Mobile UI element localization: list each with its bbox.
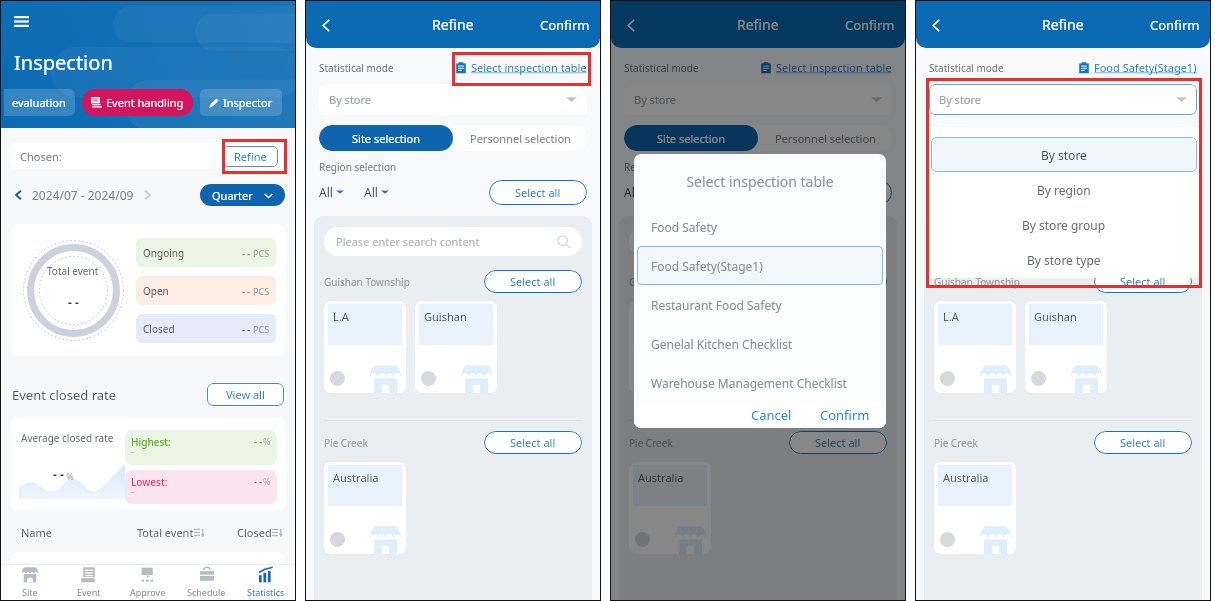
button[interactable]: Confirm <box>814 404 876 426</box>
button[interactable]: Back <box>617 11 645 39</box>
button[interactable]: Inspector <box>200 89 282 116</box>
button[interactable]: Statistics <box>236 565 295 600</box>
button[interactable]: Closed <box>136 314 276 343</box>
button[interactable]: All <box>364 184 389 200</box>
staticText: L.A <box>333 309 349 324</box>
staticText: Personnel selection <box>1080 131 1181 146</box>
staticText: Select all <box>1120 274 1166 289</box>
button[interactable]: By store <box>319 84 587 115</box>
button[interactable]: Schedule <box>177 565 236 600</box>
staticText: Approve <box>130 586 166 598</box>
button[interactable]: Warehouse Management Checklist <box>637 363 883 402</box>
button[interactable]: Refine <box>223 146 278 167</box>
staticText: 2024/07 - 2024/09 <box>32 187 134 203</box>
button[interactable]: Food Safety <box>637 207 883 246</box>
button[interactable]: Cancel <box>745 404 798 426</box>
button[interactable]: Please enter search content <box>324 227 582 256</box>
button[interactable]: Site <box>1 565 59 600</box>
button[interactable]: By region <box>931 172 1197 207</box>
button[interactable]: L.A <box>934 301 1016 393</box>
button[interactable]: Australia <box>629 462 711 554</box>
button[interactable]: Select inspection table <box>455 60 587 75</box>
button[interactable]: Site selection <box>624 125 758 151</box>
button[interactable]: Select all <box>489 180 587 205</box>
button[interactable]: Food Safety(Stage1) <box>637 246 883 285</box>
button[interactable]: View all <box>207 383 284 406</box>
button[interactable]: Select all <box>1094 270 1192 293</box>
button[interactable]: By store <box>931 137 1197 172</box>
button[interactable]: Event handling <box>82 89 193 116</box>
button[interactable]: Genelal Kitchen Checklist <box>637 324 883 363</box>
button[interactable]: By store <box>624 84 892 115</box>
staticText: - - <box>68 294 79 310</box>
button[interactable]: Confirm <box>530 10 600 40</box>
button[interactable]: Site selection <box>929 125 1063 151</box>
button[interactable]: All <box>319 184 344 200</box>
button[interactable]: Confirm <box>1140 10 1210 40</box>
staticText: By store type <box>1027 252 1101 268</box>
button[interactable]: Previous period <box>11 187 27 203</box>
button[interactable]: Quarter <box>200 184 285 206</box>
staticText: Australia <box>943 470 989 485</box>
button[interactable]: Guishan <box>415 301 497 393</box>
staticText: Confirm <box>1150 16 1200 34</box>
button[interactable]: By store <box>929 84 1197 115</box>
staticText: By store <box>1041 147 1087 163</box>
button[interactable]: All <box>669 184 694 200</box>
button[interactable]: Menu <box>6 6 37 37</box>
button[interactable]: Ongoing <box>136 238 276 267</box>
staticText: Pie Creek <box>934 436 978 450</box>
button[interactable]: Site selection <box>319 125 453 151</box>
staticText: Ongoing <box>143 246 185 260</box>
button[interactable]: By store type <box>931 242 1197 277</box>
button[interactable]: Guishan <box>1025 301 1107 393</box>
staticText: Guishan <box>1034 309 1077 324</box>
button[interactable]: L.A <box>324 301 406 393</box>
staticText: - - <box>53 466 64 482</box>
staticText: evaluation <box>12 95 66 110</box>
button[interactable]: Select all <box>794 180 892 205</box>
button[interactable]: Event <box>59 565 118 600</box>
staticText: Select inspection table <box>776 60 892 75</box>
button[interactable]: Open <box>136 276 276 305</box>
button[interactable]: Confirm <box>835 10 905 40</box>
button[interactable]: Select all <box>484 431 582 454</box>
button[interactable]: Australia <box>934 462 1016 554</box>
button[interactable]: evaluation <box>4 89 75 116</box>
button[interactable]: Select all <box>1094 431 1192 454</box>
button[interactable]: Select all <box>484 270 582 293</box>
staticText: Confirm <box>820 406 870 424</box>
staticText: Statistics <box>247 586 285 598</box>
button[interactable]: By store group <box>931 207 1197 242</box>
button[interactable]: Next period <box>139 187 155 203</box>
button[interactable]: Australia <box>324 462 406 554</box>
button[interactable]: Restaurant Food Safety <box>637 285 883 324</box>
button[interactable]: All <box>624 184 649 200</box>
staticText: % <box>64 470 74 482</box>
staticText: Statistical mode <box>319 61 394 75</box>
staticText: Site <box>22 586 38 598</box>
button[interactable]: Please enter search content <box>934 227 1192 256</box>
staticText: Food Safety(Stage1) <box>1094 60 1197 75</box>
button[interactable]: Food Safety(Stage1) <box>1078 60 1197 75</box>
button[interactable]: Select all <box>789 431 887 454</box>
button[interactable]: Guishan <box>720 301 802 393</box>
staticText: Refine <box>1042 15 1084 34</box>
staticText: Please enter search content <box>336 234 480 249</box>
button[interactable]: Back <box>922 11 950 39</box>
button[interactable]: Please enter search content <box>629 227 887 256</box>
button[interactable]: Approve <box>118 565 177 600</box>
staticText: All <box>364 184 378 200</box>
button[interactable]: L.A <box>629 301 711 393</box>
button[interactable]: Personnel selection <box>453 125 587 151</box>
staticText: Event closed rate <box>12 386 117 404</box>
button[interactable]: Select inspection table <box>760 60 892 75</box>
button[interactable]: Personnel selection <box>758 125 892 151</box>
button[interactable]: Select all <box>789 270 887 293</box>
button[interactable]: Personnel selection <box>1063 125 1197 151</box>
button[interactable]: Back <box>312 11 340 39</box>
